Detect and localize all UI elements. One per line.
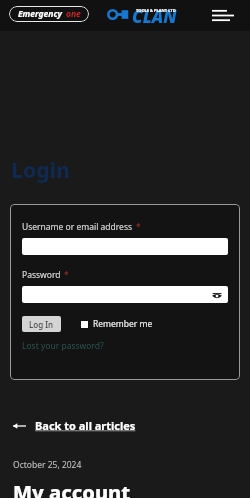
staticText: *	[136, 221, 141, 233]
button[interactable]: Password field	[22, 286, 228, 303]
staticText: Back to all articles	[35, 418, 136, 433]
staticText: TOOLS & PLANT LTD	[136, 8, 176, 13]
button[interactable]: Log In	[22, 316, 61, 332]
staticText: CLAN	[132, 5, 177, 24]
button[interactable]: Clan Tools and Plant Ltd	[108, 5, 177, 24]
staticText: Log In	[29, 319, 54, 330]
button[interactable]: Menu	[210, 6, 236, 25]
staticText: Username or email address	[22, 221, 133, 233]
staticText: Remember me	[93, 318, 153, 330]
staticText: Password	[22, 269, 61, 281]
button[interactable]: Lost your password?	[22, 340, 104, 352]
button[interactable]: Remember me	[81, 318, 153, 330]
staticText: *	[64, 269, 69, 281]
button[interactable]: Back to all articles	[13, 418, 136, 433]
staticText: one	[66, 8, 81, 20]
staticText: Login	[11, 156, 70, 185]
staticText: Emergency	[18, 8, 63, 20]
staticText: My account	[13, 479, 131, 498]
button[interactable]: Username or email address field	[22, 238, 228, 255]
staticText: October 25, 2024	[13, 459, 82, 471]
button[interactable]: Show password	[211, 289, 223, 301]
button[interactable]: Emergency One home	[9, 6, 89, 22]
